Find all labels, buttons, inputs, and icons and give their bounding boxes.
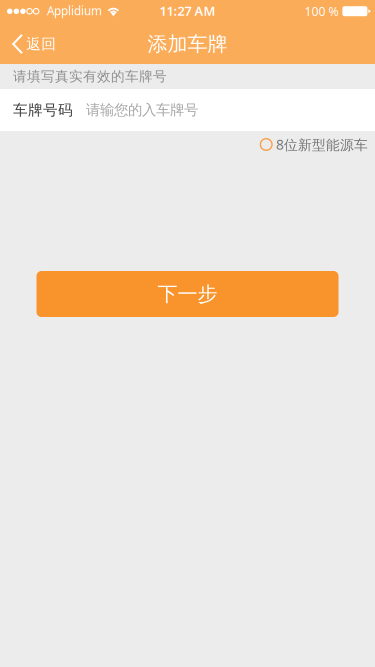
- button[interactable]: 车牌号码: [0, 89, 375, 131]
- staticText: 8位新型能源车: [276, 135, 368, 154]
- staticText: Applidium: [47, 3, 102, 19]
- button[interactable]: 8位新型能源车: [260, 129, 375, 160]
- staticText: 车牌号码: [13, 101, 73, 119]
- staticText: 100 %: [304, 3, 338, 19]
- staticText: 添加车牌: [147, 31, 227, 57]
- button[interactable]: 返回: [0, 20, 68, 64]
- button[interactable]: 下一步: [36, 271, 338, 317]
- staticText: 请输您的入车牌号: [86, 101, 198, 119]
- staticText: 请填写真实有效的车牌号: [13, 68, 167, 85]
- staticText: 下一步: [157, 281, 217, 307]
- staticText: 返回: [26, 35, 56, 53]
- staticText: 11:27 AM: [159, 2, 215, 19]
